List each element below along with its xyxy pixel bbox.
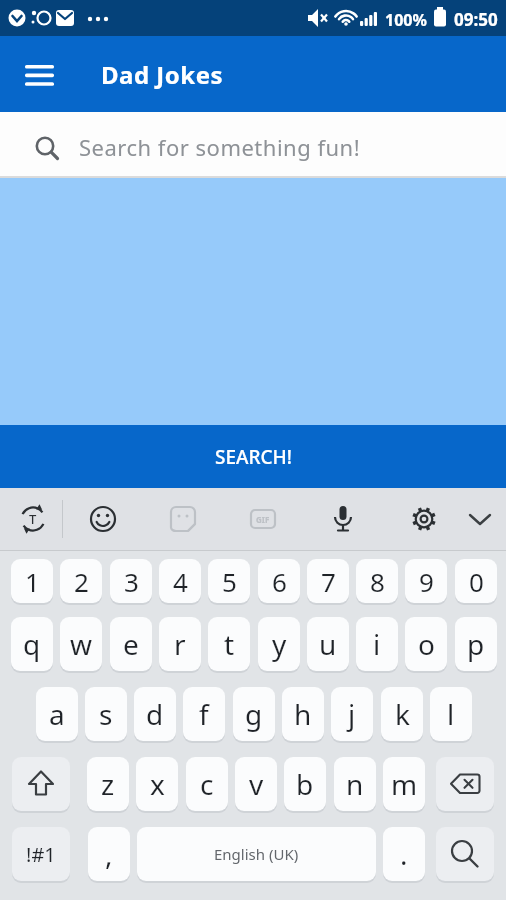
button[interactable]: b bbox=[284, 757, 326, 811]
button[interactable]: r bbox=[159, 617, 201, 671]
staticText: q bbox=[23, 625, 41, 663]
staticText: 6 bbox=[272, 564, 287, 599]
button[interactable] bbox=[436, 827, 494, 881]
button[interactable]: x bbox=[136, 757, 178, 811]
staticText: GIF bbox=[256, 514, 270, 525]
staticText: b bbox=[296, 765, 314, 803]
staticText: o bbox=[418, 625, 435, 663]
staticText: g bbox=[245, 695, 263, 733]
button[interactable]: 7 bbox=[307, 559, 349, 603]
staticText: T bbox=[29, 510, 37, 528]
button[interactable]: , bbox=[88, 827, 130, 881]
button[interactable]: z bbox=[87, 757, 129, 811]
button[interactable]: SEARCH! bbox=[0, 425, 506, 488]
staticText: y bbox=[272, 625, 287, 663]
button[interactable] bbox=[85, 501, 121, 537]
staticText: t bbox=[224, 625, 235, 663]
button[interactable] bbox=[436, 757, 494, 811]
staticText: f bbox=[199, 695, 209, 733]
button[interactable]: k bbox=[381, 687, 423, 741]
button[interactable]: . bbox=[383, 827, 425, 881]
staticText: 0 bbox=[469, 564, 484, 599]
button[interactable]: English (UK) bbox=[137, 827, 376, 881]
button[interactable]: !#1 bbox=[12, 827, 70, 881]
button[interactable] bbox=[325, 501, 361, 537]
button[interactable]: l bbox=[430, 687, 472, 741]
staticText: 1 bbox=[25, 564, 40, 599]
button[interactable]: w bbox=[60, 617, 102, 671]
button[interactable]: a bbox=[36, 687, 78, 741]
staticText: Search for something fun! bbox=[79, 132, 361, 162]
staticText: d bbox=[146, 695, 164, 733]
staticText: r bbox=[174, 625, 186, 663]
button[interactable]: c bbox=[186, 757, 228, 811]
staticText: e bbox=[123, 625, 139, 663]
button[interactable]: f bbox=[183, 687, 225, 741]
button[interactable]: u bbox=[307, 617, 349, 671]
button[interactable]: Search for something fun! bbox=[0, 112, 506, 178]
staticText: p bbox=[467, 625, 485, 663]
staticText: w bbox=[70, 625, 93, 663]
staticText: z bbox=[101, 765, 115, 803]
button[interactable]: 2 bbox=[60, 559, 102, 603]
staticText: English (UK) bbox=[214, 844, 299, 864]
staticText: 09:50 bbox=[454, 8, 498, 31]
staticText: !#1 bbox=[26, 841, 56, 868]
staticText: x bbox=[150, 765, 165, 803]
staticText: Dad Jokes bbox=[101, 58, 224, 91]
button[interactable]: d bbox=[134, 687, 176, 741]
staticText: i bbox=[373, 625, 381, 663]
staticText: 7 bbox=[321, 564, 336, 599]
staticText: j bbox=[348, 695, 356, 733]
staticText: 2 bbox=[74, 564, 89, 599]
staticText: s bbox=[99, 695, 113, 733]
staticText: u bbox=[319, 625, 337, 663]
button[interactable]: 9 bbox=[405, 559, 447, 603]
staticText: 5 bbox=[222, 564, 237, 599]
button[interactable]: g bbox=[233, 687, 275, 741]
button[interactable]: h bbox=[282, 687, 324, 741]
button[interactable] bbox=[462, 501, 498, 537]
staticText: 3 bbox=[124, 564, 139, 599]
staticText: 100% bbox=[385, 9, 427, 31]
button[interactable]: T bbox=[15, 501, 51, 537]
staticText: 8 bbox=[370, 564, 385, 599]
staticText: m bbox=[391, 765, 418, 803]
button[interactable]: 6 bbox=[258, 559, 300, 603]
button[interactable]: p bbox=[455, 617, 497, 671]
staticText: h bbox=[294, 695, 312, 733]
button[interactable]: 5 bbox=[208, 559, 250, 603]
button[interactable] bbox=[14, 54, 66, 98]
button[interactable]: e bbox=[110, 617, 152, 671]
button[interactable]: j bbox=[331, 687, 373, 741]
staticText: c bbox=[200, 765, 214, 803]
button[interactable]: q bbox=[11, 617, 53, 671]
button[interactable]: 1 bbox=[11, 559, 53, 603]
button[interactable]: n bbox=[334, 757, 376, 811]
staticText: SEARCH! bbox=[215, 444, 292, 470]
button[interactable]: m bbox=[383, 757, 425, 811]
button[interactable] bbox=[12, 757, 70, 811]
staticText: , bbox=[105, 835, 113, 873]
staticText: 4 bbox=[173, 564, 188, 599]
button[interactable]: 3 bbox=[110, 559, 152, 603]
button[interactable] bbox=[165, 501, 201, 537]
button[interactable]: 8 bbox=[356, 559, 398, 603]
staticText: l bbox=[447, 695, 455, 733]
button[interactable]: 4 bbox=[159, 559, 201, 603]
button[interactable] bbox=[406, 501, 442, 537]
button[interactable]: t bbox=[208, 617, 250, 671]
staticText: . bbox=[400, 835, 408, 873]
button[interactable]: o bbox=[405, 617, 447, 671]
button[interactable]: s bbox=[85, 687, 127, 741]
staticText: k bbox=[395, 695, 410, 733]
button[interactable]: GIF bbox=[245, 501, 281, 537]
button[interactable]: v bbox=[235, 757, 277, 811]
staticText: a bbox=[49, 695, 65, 733]
button[interactable]: i bbox=[356, 617, 398, 671]
button[interactable]: y bbox=[258, 617, 300, 671]
button[interactable]: 0 bbox=[455, 559, 497, 603]
staticText: n bbox=[346, 765, 364, 803]
staticText: 9 bbox=[419, 564, 434, 599]
staticText: v bbox=[249, 765, 264, 803]
